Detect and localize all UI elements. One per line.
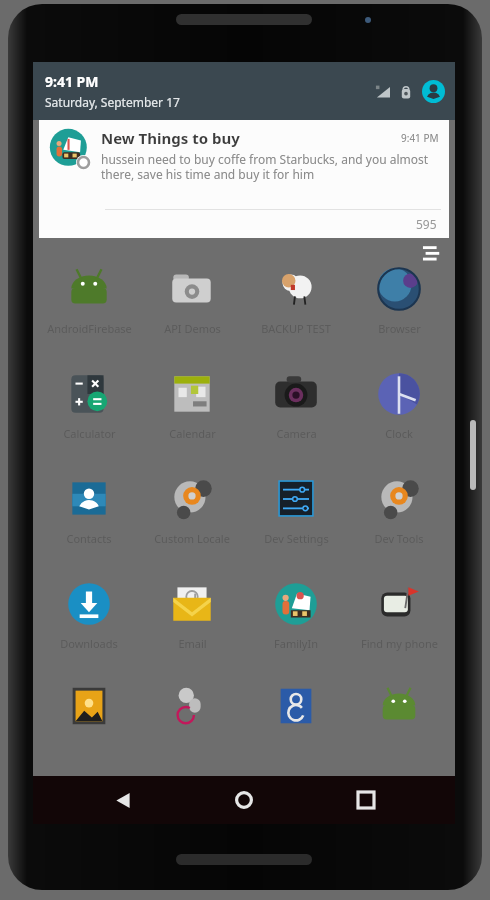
other: Signal 4G: [374, 84, 390, 100]
button[interactable]: [248, 674, 344, 736]
button[interactable]: New Things to buy: [39, 120, 449, 238]
button[interactable]: Back: [91, 778, 155, 822]
button[interactable]: Calculator: [41, 359, 137, 464]
staticText: Dev Settings: [264, 531, 329, 546]
button[interactable]: Downloads: [41, 569, 137, 674]
button[interactable]: API Demos: [144, 254, 240, 359]
button[interactable]: BACKUP TEST: [248, 254, 344, 359]
button[interactable]: Browser: [351, 254, 447, 359]
staticText: Saturday, September 17: [45, 94, 180, 110]
staticText: Contacts: [66, 531, 112, 546]
staticText: BACKUP TEST: [261, 321, 331, 336]
button[interactable]: Email: [144, 569, 240, 674]
button[interactable]: Account: [422, 80, 445, 103]
staticText: API Demos: [164, 321, 221, 336]
button[interactable]: Sort apps: [419, 244, 441, 266]
button[interactable]: FamilyIn: [248, 569, 344, 674]
button[interactable]: [351, 674, 447, 736]
button[interactable]: Clock: [351, 359, 447, 464]
staticText: Clock: [385, 426, 413, 441]
other: Battery: [399, 85, 413, 99]
button[interactable]: Find my phone: [351, 569, 447, 674]
staticText: 595: [416, 216, 437, 232]
button[interactable]: AndroidFirebase: [41, 254, 137, 359]
button[interactable]: Dev Settings: [248, 464, 344, 569]
button[interactable]: Dev Tools: [351, 464, 447, 569]
staticText: New Things to buy: [101, 128, 401, 148]
staticText: Find my phone: [361, 636, 438, 651]
staticText: Downloads: [60, 636, 118, 651]
button[interactable]: Custom Locale: [144, 464, 240, 569]
staticText: hussein need to buy coffe from Starbucks…: [101, 151, 439, 182]
button[interactable]: Calendar: [144, 359, 240, 464]
staticText: 9:41 PM: [45, 72, 99, 91]
button[interactable]: Recents: [334, 778, 398, 822]
button[interactable]: Home: [212, 778, 276, 822]
staticText: Email: [178, 636, 207, 651]
staticText: Browser: [378, 321, 421, 336]
staticText: 9:41 PM: [401, 131, 439, 145]
staticText: FamilyIn: [274, 636, 318, 651]
staticText: Calculator: [63, 426, 116, 441]
staticText: AndroidFirebase: [47, 321, 132, 336]
staticText: Camera: [276, 426, 317, 441]
button[interactable]: [144, 674, 240, 736]
staticText: Dev Tools: [374, 531, 424, 546]
staticText: Custom Locale: [154, 531, 230, 546]
button[interactable]: [41, 674, 137, 736]
staticText: Calendar: [169, 426, 216, 441]
button[interactable]: Contacts: [41, 464, 137, 569]
button[interactable]: Camera: [248, 359, 344, 464]
